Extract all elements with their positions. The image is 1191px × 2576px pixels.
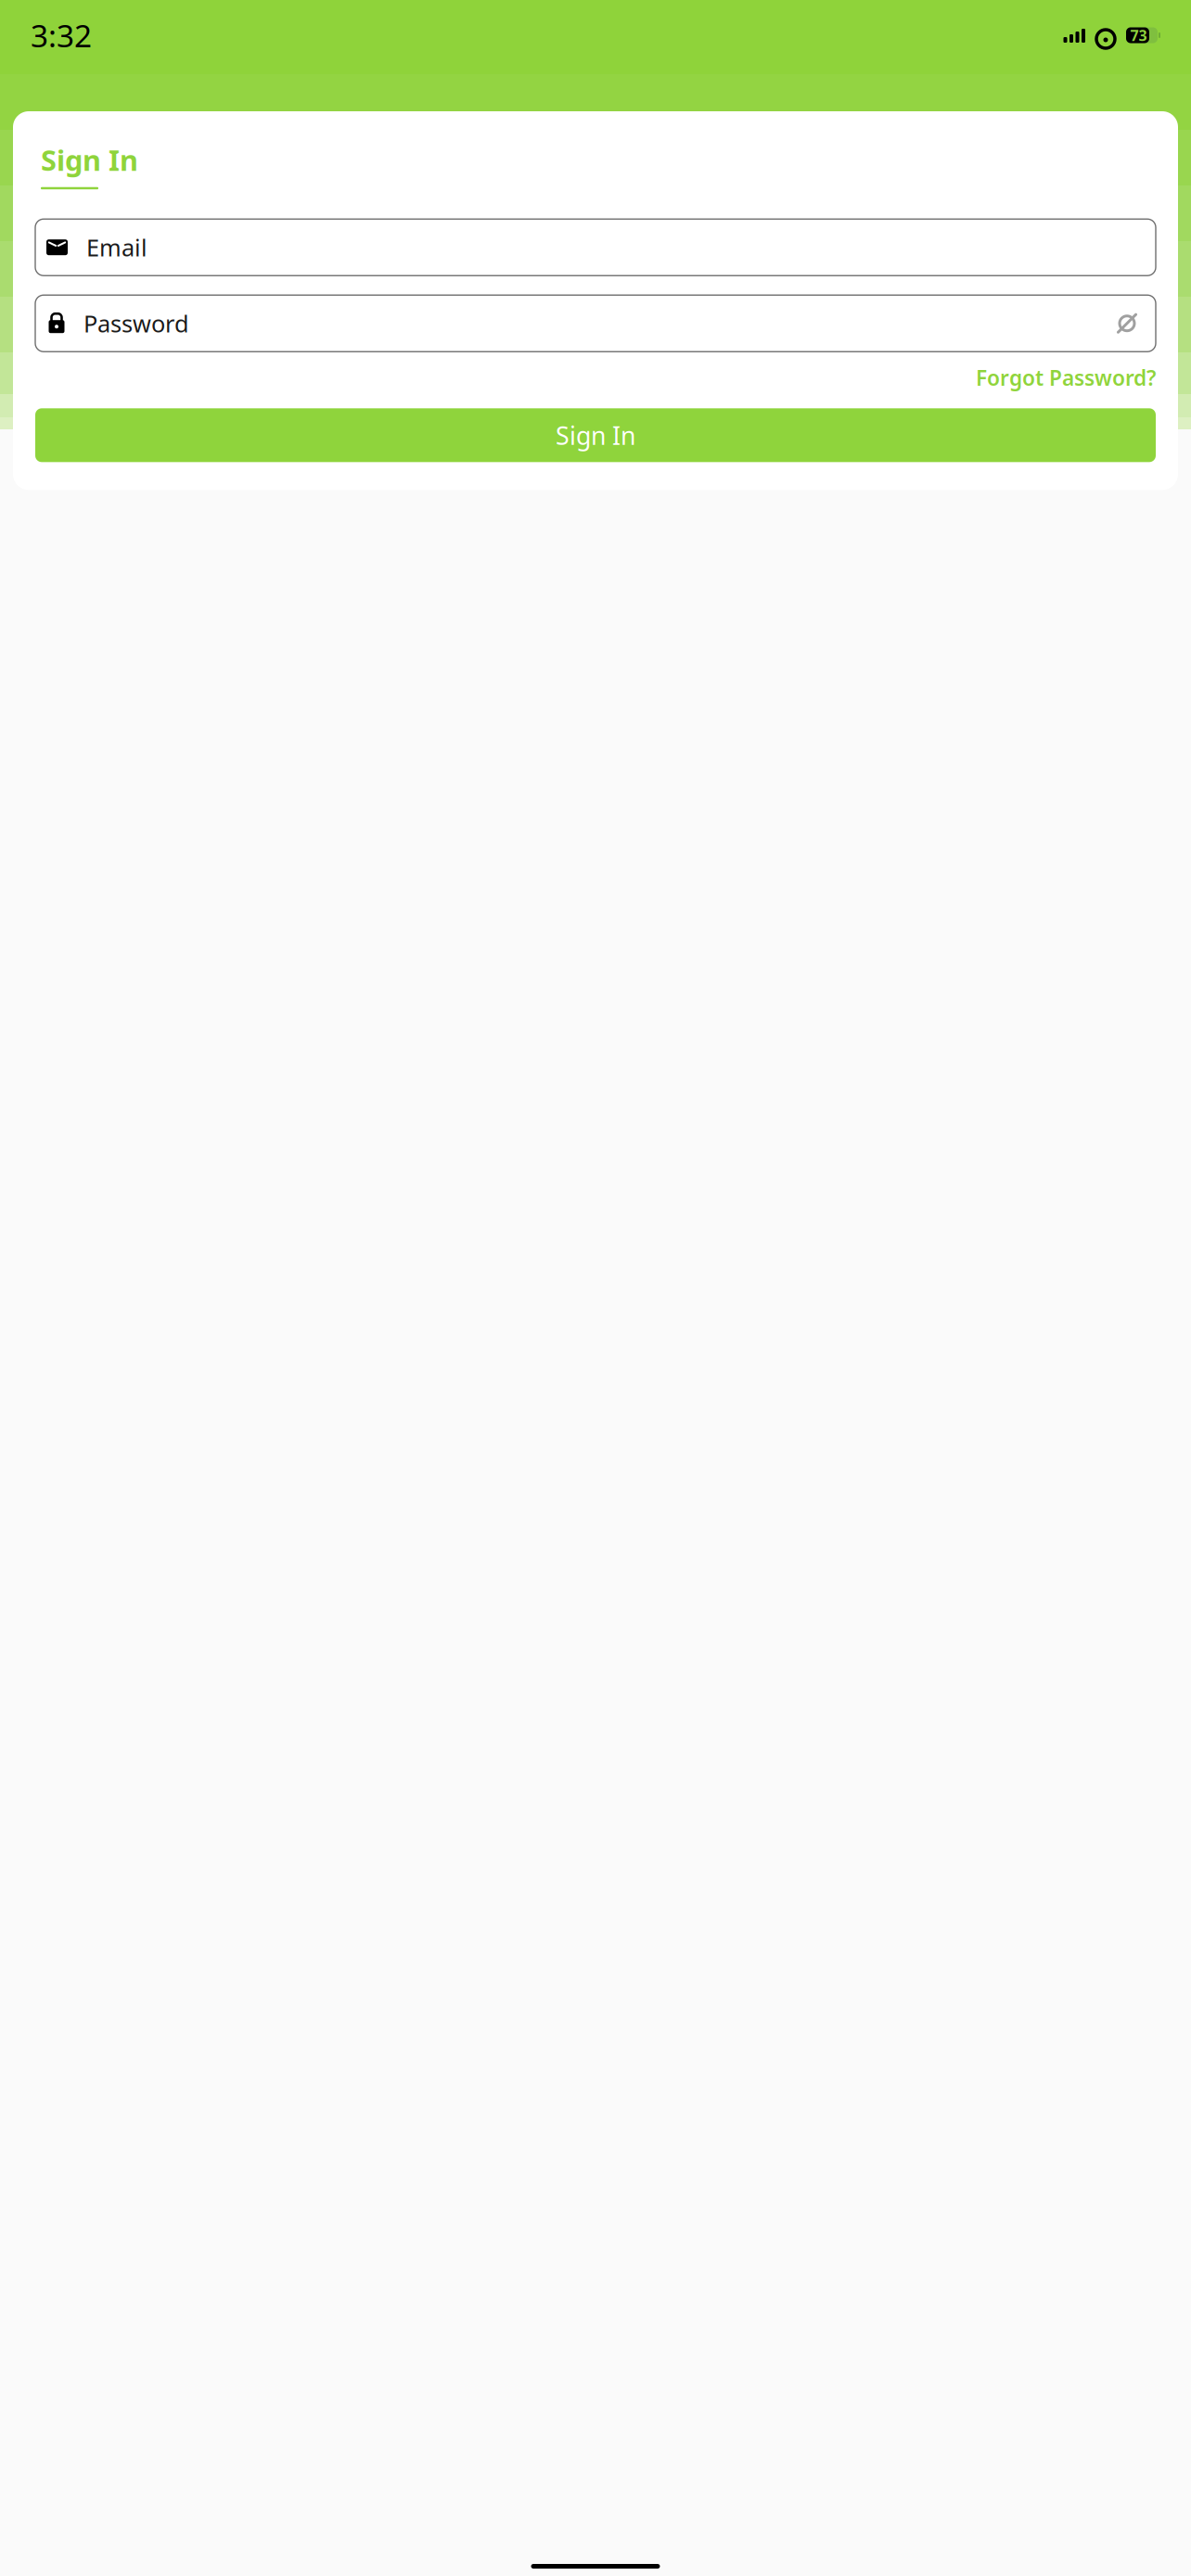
button[interactable]: Password	[35, 295, 1156, 352]
button[interactable]: Sign In	[35, 408, 1156, 462]
staticText: 3:32	[31, 15, 92, 56]
staticText: Password	[83, 308, 189, 339]
staticText: 73	[1130, 25, 1147, 45]
button[interactable]: Email	[35, 219, 1156, 276]
staticText: Sign In	[556, 419, 635, 452]
button[interactable]: Forgot Password?	[976, 364, 1156, 392]
staticText: Email	[86, 232, 147, 263]
staticText: Forgot Password?	[976, 364, 1156, 392]
button[interactable]: Sign In	[41, 141, 138, 179]
staticText: Sign In	[41, 141, 138, 179]
